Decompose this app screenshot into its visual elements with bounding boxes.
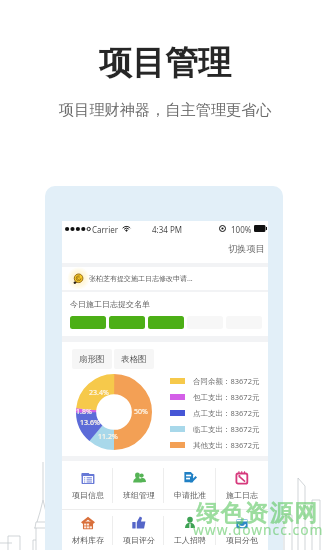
staticText: Carrier (92, 224, 119, 235)
staticText: 11.2% (98, 432, 118, 442)
button[interactable]: 张柏芝有提交施工日志修改申请... (62, 267, 268, 290)
staticText: 点工支出：83672元 (193, 408, 260, 418)
button[interactable] (70, 316, 106, 329)
staticText: 申请批准 (174, 490, 206, 500)
staticText: 项目管理 (99, 42, 231, 84)
staticText: 4:34 PM (152, 224, 183, 235)
staticText: 今日施工日志提交名单 (70, 299, 150, 309)
staticText: 其他支出：83672元 (193, 440, 260, 450)
staticText: 绿色资源网 (196, 499, 319, 528)
button[interactable] (148, 316, 184, 329)
button[interactable]: 项目信息 (62, 461, 113, 509)
button[interactable]: 申请批准 (164, 461, 216, 509)
staticText: 扇形图 (79, 354, 105, 365)
button[interactable]: 班组管理 (113, 461, 164, 509)
staticText: 23.4% (89, 388, 109, 398)
button[interactable]: 表格图 (114, 349, 154, 369)
staticText: 班组管理 (123, 490, 155, 500)
staticText: 1.8% (76, 407, 92, 417)
staticText: 项目评分 (123, 535, 155, 545)
button[interactable]: 工人招聘 (164, 510, 216, 550)
button[interactable]: 切换项目 (223, 239, 268, 259)
staticText: 50% (134, 407, 148, 417)
button[interactable] (109, 316, 145, 329)
button[interactable]: 施工日志 (216, 461, 268, 509)
button[interactable]: 项目评分 (113, 510, 164, 550)
staticText: 材料库存 (72, 535, 104, 545)
staticText: 包工支出：83672元 (193, 392, 260, 402)
staticText: 工人招聘 (174, 535, 206, 545)
staticText: 张柏芝有提交施工日志修改申请... (89, 274, 193, 284)
staticText: 项目理财神器，自主管理更省心 (59, 100, 272, 119)
staticText: 100% (231, 224, 252, 235)
staticText: 施工日志 (226, 490, 258, 500)
staticText: 项目分包 (226, 535, 258, 545)
staticText: 表格图 (121, 354, 147, 365)
staticText: 13.6% (80, 418, 100, 428)
button[interactable]: 扇形图 (72, 349, 112, 369)
staticText: 临工支出：83672元 (193, 424, 260, 434)
button[interactable]: 材料库存 (62, 510, 113, 550)
staticText: 合同余额：83672元 (193, 376, 260, 386)
staticText: www.downcc.com (193, 520, 324, 539)
staticText: 项目信息 (72, 490, 104, 500)
staticText: 切换项目 (228, 243, 265, 255)
button[interactable]: 项目分包 (216, 510, 268, 550)
